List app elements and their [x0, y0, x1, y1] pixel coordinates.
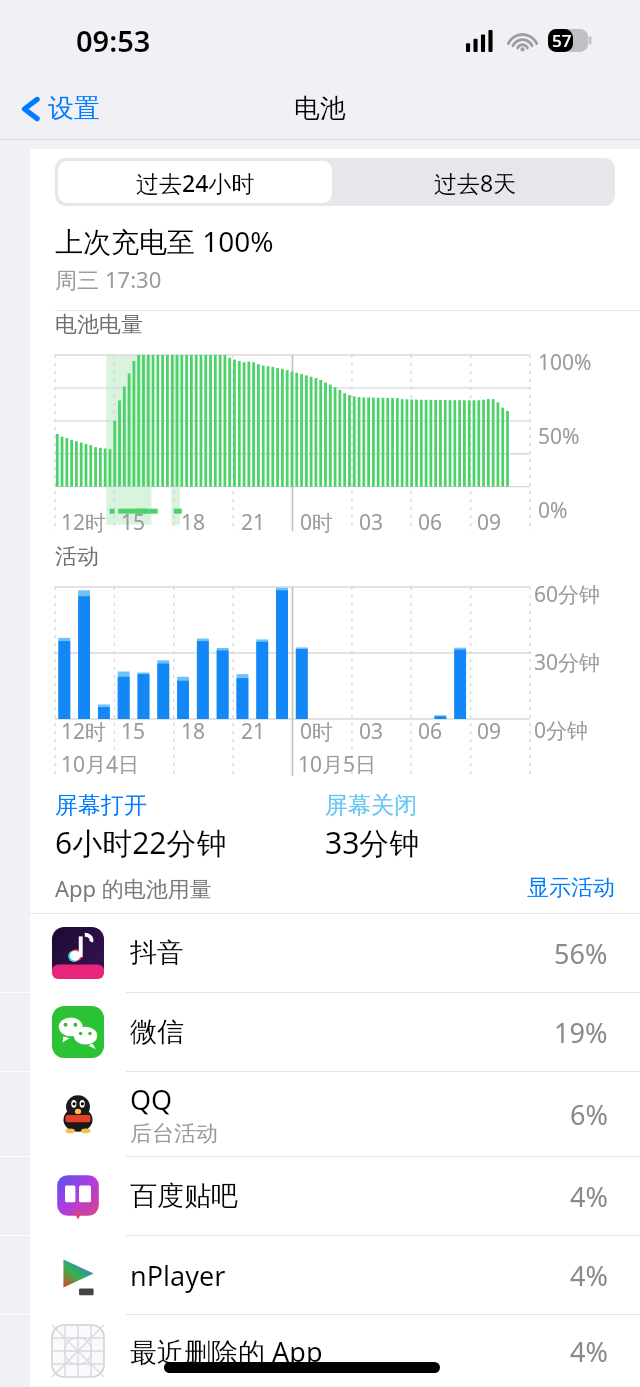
button[interactable]: nPlayer: [30, 1236, 640, 1314]
button[interactable]: 过去24小时: [58, 161, 332, 203]
staticText: 百度贴吧: [130, 1179, 238, 1213]
staticText: 18: [181, 508, 206, 537]
staticText: 10月5日: [298, 750, 377, 779]
staticText: 15: [121, 717, 146, 746]
staticText: nPlayer: [130, 1257, 226, 1294]
staticText: 屏幕打开: [55, 791, 147, 820]
staticText: 0时: [300, 717, 334, 746]
staticText: 显示活动: [527, 874, 615, 902]
staticText: 56%: [554, 935, 608, 972]
staticText: 周三: [55, 264, 105, 294]
staticText: 6小时22分钟: [55, 822, 227, 863]
staticText: 过去8天: [434, 167, 517, 198]
staticText: 06: [418, 508, 443, 537]
staticText: 设置: [48, 92, 100, 125]
staticText: 4%: [570, 1257, 608, 1294]
staticText: 100%: [538, 348, 592, 377]
staticText: 03: [359, 717, 384, 746]
button[interactable]: 显示活动: [527, 874, 615, 902]
staticText: 09:53: [76, 21, 151, 60]
button[interactable]: 微信: [30, 993, 640, 1071]
button[interactable]: 百度贴吧: [30, 1157, 640, 1235]
staticText: 19%: [554, 1014, 608, 1051]
staticText: 上次充电至 100%: [55, 222, 274, 260]
staticText: 33分钟: [325, 822, 420, 863]
staticText: 6%: [570, 1096, 608, 1133]
staticText: 屏幕关闭: [325, 791, 417, 820]
staticText: 15: [121, 508, 146, 537]
staticText: App 的电池用量: [55, 873, 212, 903]
staticText: 后台活动: [130, 1120, 218, 1148]
staticText: 4%: [570, 1178, 608, 1215]
button[interactable]: 设置: [20, 92, 100, 125]
staticText: 60分钟: [534, 580, 601, 609]
staticText: QQ: [130, 1081, 173, 1118]
staticText: 10月4日: [61, 750, 140, 779]
staticText: 50%: [538, 422, 580, 451]
button[interactable]: 最近删除的 App: [30, 1315, 640, 1387]
staticText: 03: [359, 508, 384, 537]
staticText: 06: [418, 717, 443, 746]
staticText: 0分钟: [534, 716, 589, 745]
staticText: 17:30: [105, 264, 162, 294]
staticText: 抖音: [130, 936, 184, 970]
staticText: 最近删除的 App: [130, 1333, 323, 1370]
staticText: 18: [181, 717, 206, 746]
button[interactable]: 抖音: [30, 914, 640, 992]
staticText: 12时: [61, 717, 107, 746]
staticText: 30分钟: [534, 648, 601, 677]
staticText: 12时: [61, 508, 107, 537]
staticText: 0%: [538, 496, 568, 525]
staticText: 过去24小时: [136, 167, 255, 198]
staticText: 电池电量: [55, 311, 143, 339]
staticText: 21: [241, 717, 266, 746]
staticText: 活动: [55, 543, 99, 571]
button[interactable]: QQ: [30, 1072, 640, 1156]
staticText: 0时: [300, 508, 334, 537]
staticText: 4%: [570, 1333, 608, 1370]
staticText: 21: [241, 508, 266, 537]
staticText: 微信: [130, 1015, 184, 1049]
staticText: 57: [552, 29, 572, 52]
staticText: 09: [477, 508, 502, 537]
staticText: 09: [477, 717, 502, 746]
button[interactable]: 过去8天: [335, 158, 615, 206]
staticText: 电池: [294, 92, 346, 125]
